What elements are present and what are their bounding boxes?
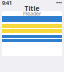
staticText: ••• [56,0,62,7]
staticText: 9:41 [2,0,12,7]
staticText: Title [24,4,39,13]
staticText: Header [23,10,41,17]
